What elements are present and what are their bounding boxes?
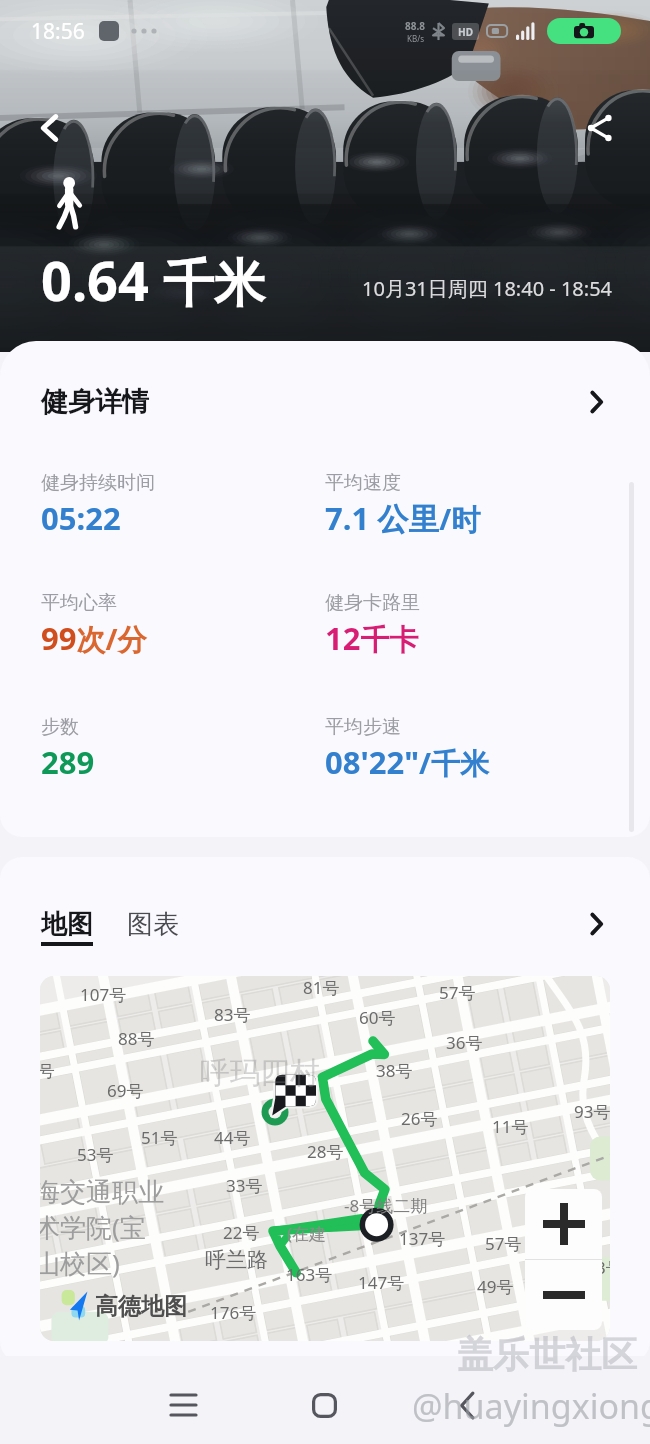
staticText: -8号线二期: [344, 1194, 428, 1217]
staticText: 图表: [127, 908, 179, 941]
staticText: 盖乐世社区: [457, 1332, 637, 1377]
staticText: 11号: [492, 1115, 529, 1138]
staticText: 平均步速: [325, 715, 401, 739]
staticText: 海交通职业: [40, 1176, 164, 1209]
staticText: 山校区): [40, 1245, 120, 1281]
staticText: 49号: [477, 1275, 514, 1298]
button[interactable]: Back: [22, 100, 78, 156]
button[interactable]: Back: [419, 1361, 515, 1444]
staticText: 57号: [439, 981, 476, 1004]
button[interactable]: Route map: [40, 976, 610, 1341]
staticText: 0.64 千米: [41, 243, 265, 317]
staticText: 81号: [303, 976, 340, 999]
staticText: 99次/分: [41, 617, 147, 659]
staticText: 高德地图: [95, 1292, 187, 1321]
staticText: 51号: [141, 1126, 178, 1149]
button[interactable]: Recent apps: [135, 1361, 231, 1444]
staticText: 176号: [210, 1301, 257, 1324]
staticText: KB/s: [407, 33, 424, 44]
staticText: 26号: [401, 1107, 438, 1130]
button[interactable]: Share: [572, 100, 628, 156]
staticText: 7.1 公里/时: [325, 497, 481, 539]
button[interactable]: Zoom in: [525, 1189, 602, 1259]
staticText: (在建: [287, 1222, 327, 1245]
staticText: 88号: [118, 1027, 155, 1050]
staticText: 163号: [286, 1263, 333, 1286]
staticText: 08'22"/千米: [325, 741, 490, 783]
staticText: 107号: [80, 983, 127, 1006]
staticText: 147号: [358, 1271, 405, 1294]
staticText: 93号: [574, 1100, 610, 1123]
staticText: 05:22: [41, 497, 121, 539]
staticText: 2号: [40, 1059, 55, 1082]
staticText: 28号: [307, 1140, 344, 1163]
staticText: 22号: [223, 1221, 260, 1244]
staticText: 57号: [485, 1232, 522, 1255]
staticText: HD: [458, 25, 473, 39]
button[interactable]: 图表: [127, 908, 179, 941]
staticText: 53号: [77, 1143, 114, 1166]
staticText: 平均心率: [41, 591, 117, 615]
staticText: 83号: [214, 1003, 251, 1026]
button[interactable]: Zoom out: [525, 1260, 602, 1330]
staticText: 88.8: [405, 19, 425, 33]
staticText: 33号: [226, 1174, 263, 1197]
staticText: 18:56: [31, 17, 85, 46]
staticText: 呼兰路: [205, 1247, 268, 1273]
staticText: 健身详情: [41, 385, 149, 419]
staticText: 10月31日周四 18:40 - 18:54: [362, 275, 613, 302]
staticText: 38号: [376, 1059, 413, 1082]
staticText: 69号: [107, 1079, 144, 1102]
staticText: 健身持续时间: [41, 471, 155, 495]
button[interactable]: Home: [276, 1361, 372, 1444]
staticText: 3号: [596, 1256, 610, 1279]
staticText: @huayingxiong: [412, 1383, 650, 1429]
staticText: 289: [41, 741, 95, 783]
staticText: 地图: [41, 908, 93, 941]
staticText: 平均速度: [325, 471, 401, 495]
button[interactable]: 健身详情: [0, 341, 650, 462]
staticText: 术学院(宝: [40, 1209, 146, 1245]
button[interactable]: 地图: [41, 908, 93, 946]
staticText: 步数: [41, 715, 79, 739]
staticText: 60号: [359, 1006, 396, 1029]
staticText: 137号: [399, 1227, 446, 1250]
staticText: 44号: [214, 1126, 251, 1149]
staticText: 呼玛四村: [200, 1054, 320, 1092]
staticText: 36号: [446, 1031, 483, 1054]
staticText: 健身卡路里: [325, 591, 420, 615]
staticText: 12千卡: [325, 617, 419, 659]
